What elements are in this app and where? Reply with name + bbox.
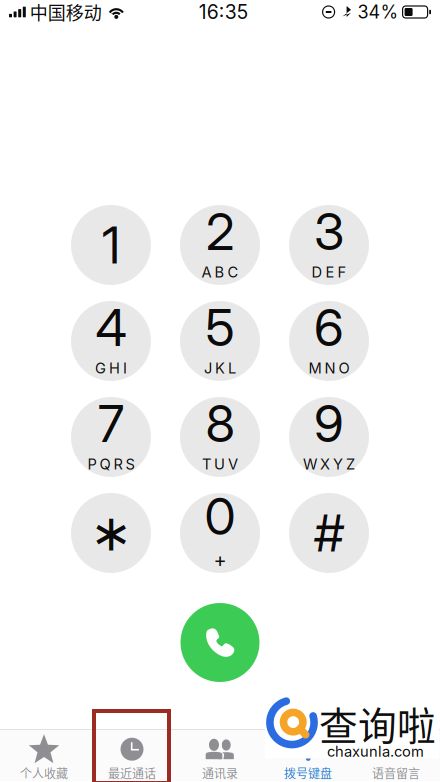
button[interactable]: 拨号键盘 <box>264 730 352 781</box>
button[interactable]: 5 <box>180 301 260 381</box>
button[interactable]: ∗ <box>71 493 151 573</box>
button[interactable]: 4 <box>71 301 151 381</box>
staticText: D E F <box>311 263 346 281</box>
staticText: T U V <box>202 455 238 473</box>
button[interactable]: 最近通话 <box>88 730 176 781</box>
staticText: W X Y Z <box>303 455 355 473</box>
staticText: 7 <box>98 393 124 454</box>
staticText: 4 <box>95 297 126 358</box>
button[interactable]: 个人收藏 <box>0 730 88 781</box>
staticText: + <box>213 548 226 572</box>
staticText: 9 <box>314 393 344 454</box>
staticText: 语音留言 <box>372 764 420 782</box>
staticText: 查询啦 <box>319 695 436 751</box>
button[interactable]: # <box>289 493 369 573</box>
staticText: G H I <box>95 359 127 377</box>
button[interactable]: 3 <box>289 205 369 285</box>
button[interactable]: Call <box>180 603 259 682</box>
staticText: 3 <box>314 201 344 262</box>
button[interactable]: 6 <box>289 301 369 381</box>
staticText: 通讯录 <box>202 764 238 782</box>
staticText: 拨号键盘 <box>284 764 332 782</box>
button[interactable]: 通讯录 <box>176 730 264 781</box>
staticText: 1 <box>102 214 120 276</box>
staticText: 中国移动 <box>30 0 102 25</box>
staticText: 最近通话 <box>108 764 156 782</box>
staticText: ∗ <box>90 503 132 562</box>
button[interactable]: 1 <box>71 205 151 285</box>
staticText: 6 <box>314 297 344 358</box>
staticText: chaxunla.com <box>327 742 424 760</box>
button[interactable]: 语音留言 <box>352 730 440 781</box>
staticText: 0 <box>204 486 235 547</box>
button[interactable]: 0 <box>180 493 260 573</box>
staticText: J K L <box>204 359 236 377</box>
staticText: 34% <box>358 1 399 23</box>
button[interactable]: 9 <box>289 397 369 477</box>
staticText: 2 <box>206 201 234 262</box>
staticText: 16:35 <box>199 0 248 24</box>
staticText: P Q R S <box>87 455 134 473</box>
staticText: M N O <box>308 359 349 377</box>
staticText: # <box>314 502 344 564</box>
button[interactable]: 7 <box>71 397 151 477</box>
button[interactable]: 2 <box>180 205 260 285</box>
button[interactable]: 8 <box>180 397 260 477</box>
staticText: 5 <box>205 297 234 358</box>
staticText: 8 <box>205 393 234 454</box>
staticText: 个人收藏 <box>20 764 68 782</box>
staticText: A B C <box>201 263 238 281</box>
